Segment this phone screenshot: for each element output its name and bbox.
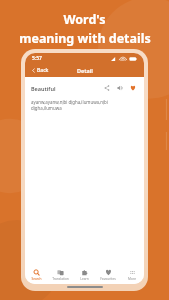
staticText: ayanw,ayanw,nịbi dịgha,ilumuwa,nịbi dịgh… (31, 99, 108, 111)
staticText: 5:57 (32, 55, 42, 62)
staticText: Learn (80, 277, 89, 281)
button[interactable]: Favourites (96, 266, 120, 284)
staticText: Beautiful (31, 85, 56, 92)
button[interactable]: Back (30, 66, 50, 75)
staticText: Search (31, 277, 42, 281)
staticText: Detail (77, 67, 93, 74)
button[interactable]: Favourite (128, 83, 138, 93)
button[interactable]: More (120, 266, 144, 284)
staticText: Word's (63, 11, 106, 28)
staticText: Back (37, 67, 49, 74)
button[interactable]: Translation (48, 266, 72, 284)
staticText: Translation (52, 277, 69, 281)
button[interactable]: Share (102, 83, 112, 93)
staticText: meaning with details (19, 30, 151, 47)
staticText: More (128, 277, 136, 281)
staticText: Favourites (100, 277, 116, 281)
button[interactable]: Pronounce (115, 83, 125, 93)
button[interactable]: Learn (72, 266, 96, 284)
button[interactable]: Search (25, 266, 48, 284)
